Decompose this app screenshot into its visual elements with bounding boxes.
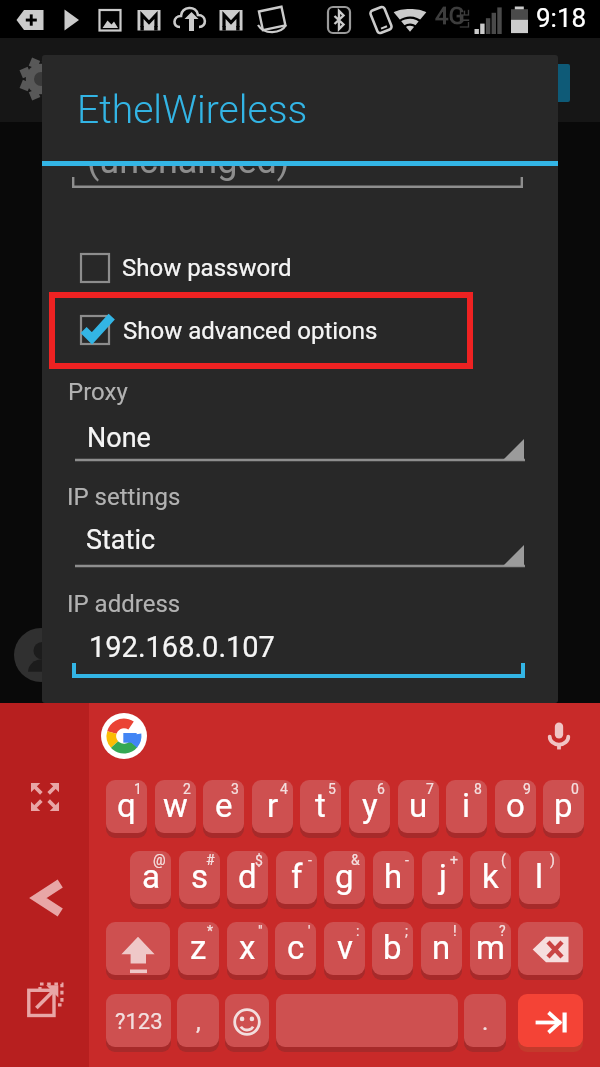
staticText: n — [432, 928, 451, 967]
button[interactable]: Open in new window — [27, 982, 63, 1018]
staticText: 7 — [426, 781, 434, 797]
staticText: + — [450, 852, 458, 868]
staticText: e — [215, 786, 233, 825]
staticText: 5 — [328, 781, 336, 797]
staticText: 2 — [183, 781, 191, 797]
button[interactable]: z — [178, 922, 219, 978]
staticText: w — [163, 786, 188, 825]
button[interactable]: Emoji — [225, 994, 269, 1050]
staticText: None — [87, 422, 151, 454]
button[interactable]: u — [398, 780, 439, 836]
staticText: d — [238, 857, 257, 896]
staticText: ; — [405, 923, 408, 939]
staticText: ?123 — [115, 1009, 163, 1035]
staticText: EthelWireless — [77, 87, 308, 133]
button[interactable]: t — [300, 780, 341, 836]
button[interactable]: r — [252, 780, 293, 836]
button[interactable]: y — [349, 780, 390, 836]
staticText: c — [287, 928, 305, 967]
button[interactable]: f — [276, 851, 317, 907]
button[interactable]: g — [324, 851, 365, 907]
staticText: g — [335, 857, 354, 896]
button[interactable]: . — [464, 994, 506, 1050]
staticText: q — [117, 786, 136, 825]
staticText: " — [258, 923, 263, 939]
staticText: $ — [255, 852, 263, 868]
button[interactable]: q — [106, 780, 147, 836]
button[interactable]: m — [470, 922, 511, 978]
button[interactable]: Resize keyboard — [31, 783, 59, 811]
button[interactable]: c — [275, 922, 316, 978]
button[interactable]: a — [130, 851, 171, 907]
button[interactable]: v — [324, 922, 365, 978]
staticText: u — [409, 786, 428, 825]
button[interactable]: Space — [276, 994, 458, 1050]
staticText: ) — [550, 852, 555, 868]
staticText: Show password — [122, 254, 292, 282]
staticText: @ — [153, 852, 166, 868]
button[interactable]: , — [177, 994, 219, 1050]
staticText: ' — [308, 923, 311, 939]
button[interactable]: l — [519, 851, 560, 907]
staticText: v — [337, 928, 353, 967]
button[interactable]: p — [543, 780, 584, 836]
staticText: LTE — [457, 9, 471, 28]
button[interactable]: b — [372, 922, 413, 978]
staticText: ? — [499, 923, 506, 939]
staticText: 9 — [523, 781, 531, 797]
button[interactable] — [70, 302, 380, 352]
button[interactable]: None — [75, 411, 525, 466]
button[interactable]: j — [422, 851, 463, 907]
staticText: : — [356, 923, 360, 939]
button[interactable]: h — [373, 851, 414, 907]
staticText: 192.168.0.107 — [89, 630, 275, 664]
staticText: ( — [501, 852, 506, 868]
staticText: * — [207, 923, 214, 939]
button[interactable]: k — [470, 851, 511, 907]
button[interactable]: d — [227, 851, 268, 907]
staticText: . — [482, 1008, 489, 1036]
staticText: b — [383, 928, 402, 967]
button[interactable]: ?123 — [106, 994, 171, 1050]
staticText: Static — [86, 524, 156, 556]
staticText: - — [308, 852, 312, 868]
staticText: 3 — [231, 781, 239, 797]
staticText: a — [142, 857, 160, 896]
button[interactable]: n — [421, 922, 462, 978]
staticText: (unchanged) — [87, 166, 290, 182]
button[interactable]: Back — [30, 880, 66, 916]
button[interactable]: Shift — [106, 922, 170, 978]
staticText: # — [206, 852, 215, 868]
staticText: 6 — [377, 781, 385, 797]
staticText: m — [476, 928, 505, 967]
staticText: x — [239, 928, 256, 967]
button[interactable]: i — [446, 780, 487, 836]
button[interactable]: Voice input — [543, 720, 575, 752]
button[interactable]: w — [155, 780, 196, 836]
staticText: t — [315, 786, 326, 825]
button[interactable]: e — [203, 780, 244, 836]
staticText: p — [554, 786, 573, 825]
button[interactable]: Enter — [518, 994, 583, 1050]
staticText: o — [506, 786, 525, 825]
staticText: 1 — [134, 781, 142, 797]
staticText: , — [196, 1008, 201, 1036]
button[interactable]: s — [179, 851, 220, 907]
staticText: Show advanced options — [123, 317, 378, 345]
button[interactable]: x — [227, 922, 268, 978]
button[interactable]: o — [495, 780, 536, 836]
staticText: 4 — [280, 781, 288, 797]
staticText: 0 — [571, 781, 579, 797]
button[interactable]: Google search — [101, 713, 147, 759]
button[interactable]: Static — [75, 513, 525, 572]
staticText: k — [482, 857, 499, 896]
button[interactable]: Backspace — [518, 922, 583, 978]
staticText: Proxy — [68, 378, 128, 406]
button[interactable] — [70, 240, 180, 290]
staticText: 8 — [474, 781, 482, 797]
staticText: y — [362, 786, 378, 825]
staticText: 4G — [435, 2, 465, 30]
staticText: - — [405, 852, 409, 868]
staticText: f — [291, 857, 303, 896]
staticText: z — [190, 928, 207, 967]
